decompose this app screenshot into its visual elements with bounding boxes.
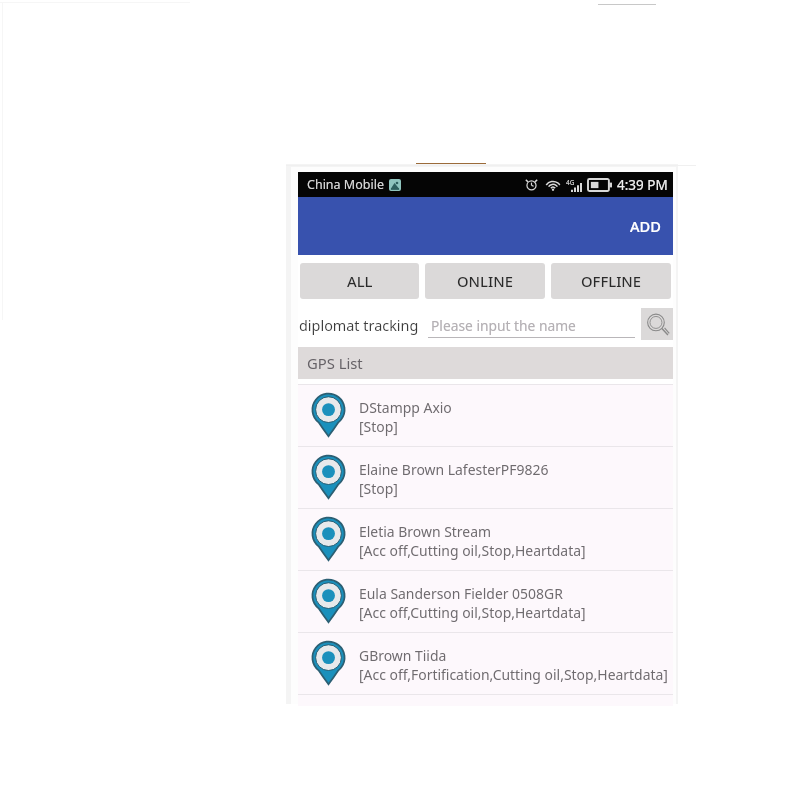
staticText: 4:39 PM — [617, 176, 668, 194]
button[interactable]: ONLINE — [425, 263, 545, 299]
staticText: ONLINE — [457, 271, 513, 291]
staticText: China Mobile — [307, 176, 384, 193]
button[interactable]: OFFLINE — [551, 263, 671, 299]
staticText: Please input the name — [431, 316, 576, 335]
staticText: ALL — [347, 271, 373, 291]
button[interactable]: Eula Sanderson Fielder 0508GR — [298, 570, 673, 632]
staticText: GBrown Tiida — [359, 646, 447, 665]
button[interactable]: Elaine Brown LafesterPF9826 — [298, 446, 673, 508]
button[interactable]: Eletia Brown Stream — [298, 508, 673, 570]
staticText: OFFLINE — [581, 271, 642, 291]
button[interactable]: Search — [641, 308, 673, 340]
staticText: [Acc off,Cutting oil,Stop,Heartdata] — [359, 603, 586, 622]
staticText: Elaine Brown LafesterPF9826 — [359, 460, 549, 479]
staticText: [Acc off,Cutting oil,Stop,Heartdata] — [359, 541, 586, 560]
staticText: Eula Sanderson Fielder 0508GR — [359, 584, 563, 603]
button[interactable]: ALL — [300, 263, 419, 299]
staticText: [Stop] — [359, 479, 398, 498]
staticText: ADD — [630, 216, 661, 236]
staticText: GPS List — [307, 353, 363, 373]
staticText: 4G — [566, 178, 575, 187]
staticText: Eletia Brown Stream — [359, 522, 492, 541]
staticText: diplomat tracking — [299, 316, 419, 336]
button[interactable]: DStampp Axio — [298, 384, 673, 446]
button[interactable]: GBrown Tiida — [298, 632, 673, 694]
button[interactable]: ADD — [618, 206, 673, 246]
staticText: [Acc off,Fortification,Cutting oil,Stop,… — [359, 665, 668, 684]
staticText: DStampp Axio — [359, 398, 452, 417]
staticText: [Stop] — [359, 417, 398, 436]
